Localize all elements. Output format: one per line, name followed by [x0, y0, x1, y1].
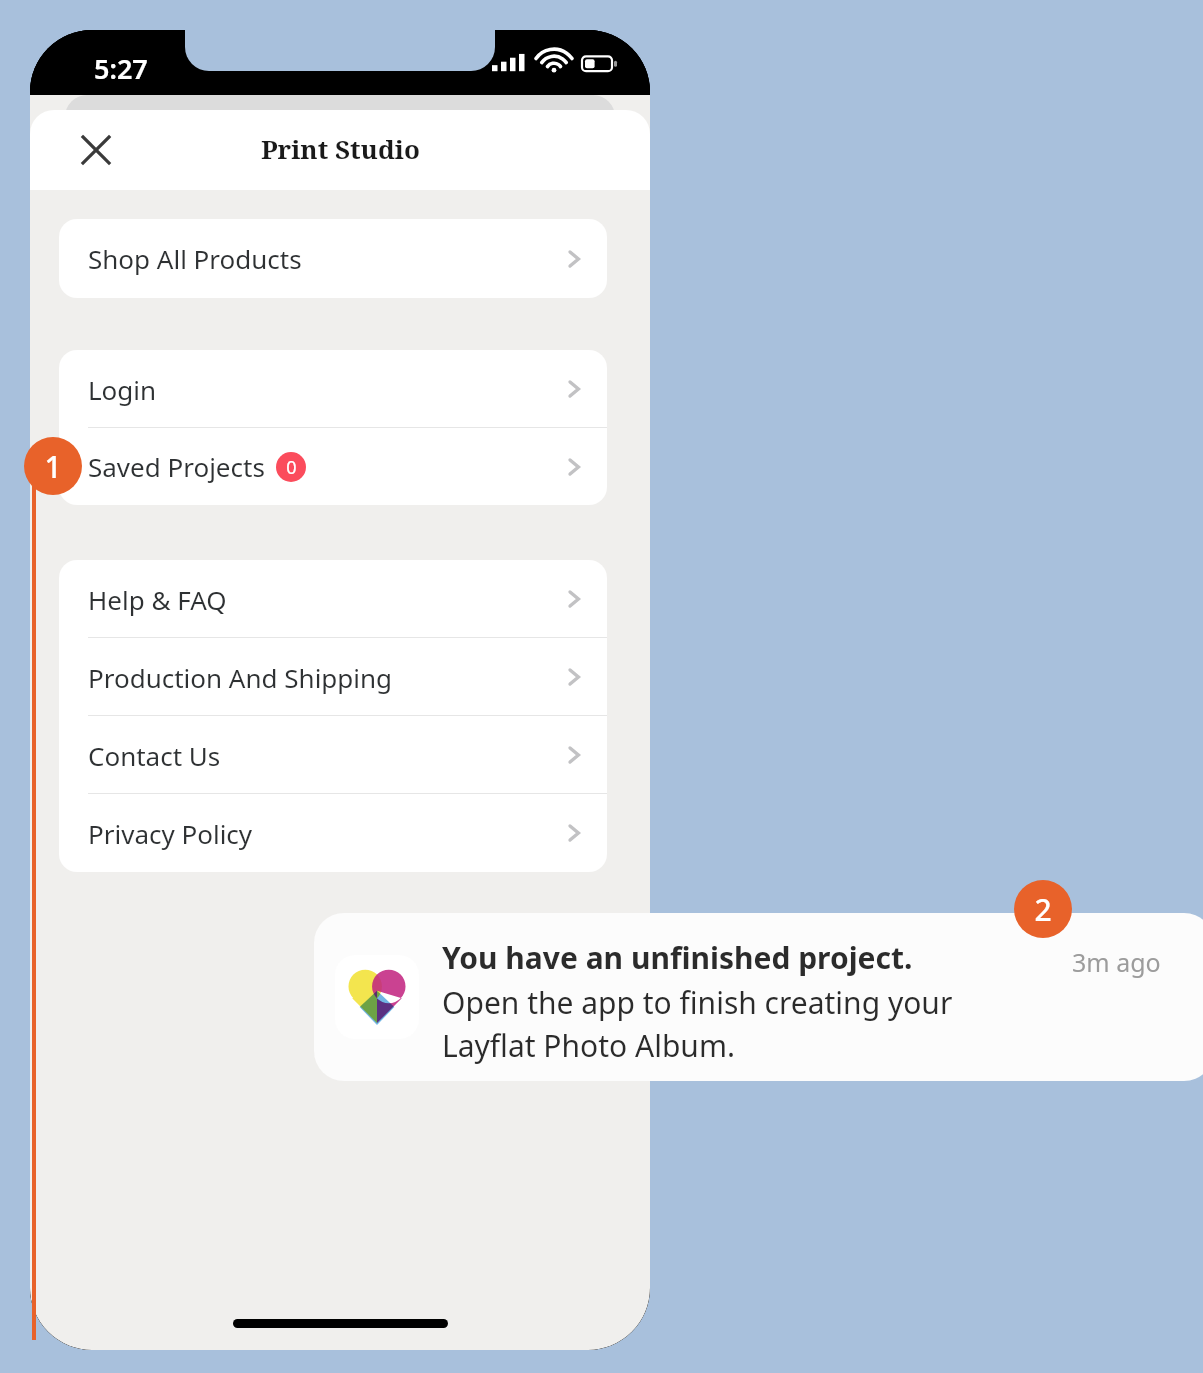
button[interactable]: Privacy Policy — [59, 794, 607, 872]
button[interactable]: Shop All Products — [59, 219, 607, 298]
staticText: Shop All Products — [88, 241, 302, 276]
staticText: 1 — [44, 446, 62, 487]
staticText: You have an unfinished project. — [442, 937, 913, 978]
staticText: 3m ago — [1072, 945, 1161, 979]
staticText: Production And Shipping — [88, 660, 393, 695]
button[interactable]: You have an unfinished project. — [314, 913, 1203, 1081]
staticText: 5:27 — [94, 50, 148, 87]
button[interactable]: Close — [70, 124, 122, 176]
button[interactable]: Login — [59, 350, 607, 428]
staticText: Login — [88, 372, 157, 407]
button[interactable]: Help & FAQ — [59, 560, 607, 638]
staticText: Print Studio — [261, 131, 420, 166]
staticText: Privacy Policy — [88, 816, 253, 851]
staticText: 0 — [286, 455, 297, 480]
staticText: Contact Us — [88, 738, 221, 773]
staticText: Help & FAQ — [88, 582, 227, 617]
button[interactable]: Production And Shipping — [59, 638, 607, 716]
button[interactable]: Contact Us — [59, 716, 607, 794]
staticText: Layflat Photo Album. — [442, 1025, 735, 1066]
staticText: Open the app to finish creating your — [442, 982, 953, 1023]
button[interactable]: Saved Projects — [59, 428, 607, 505]
staticText: 2 — [1034, 889, 1052, 930]
staticText: Saved Projects — [88, 449, 265, 484]
